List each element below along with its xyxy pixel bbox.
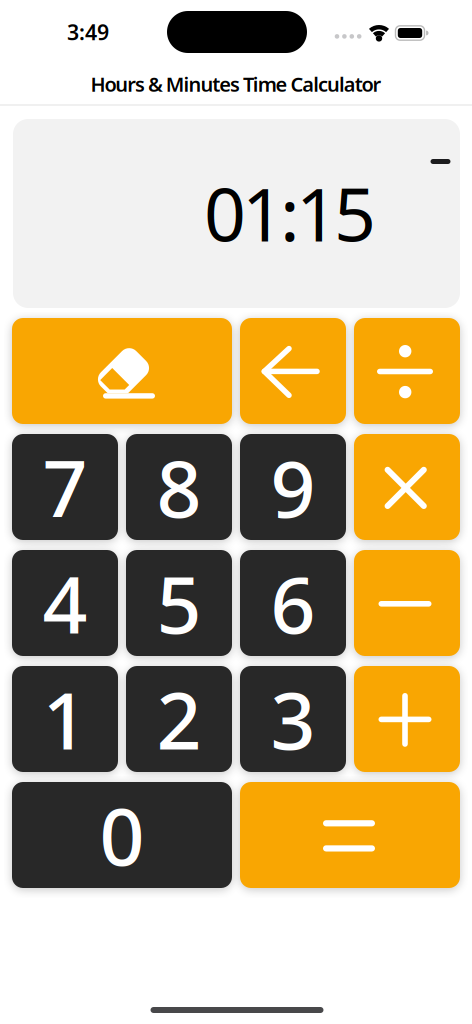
staticText: 3 — [270, 667, 315, 771]
staticText: 9 — [270, 435, 315, 539]
staticText: 8 — [156, 435, 201, 539]
button[interactable]: 9 — [240, 434, 346, 540]
button[interactable]: Add — [354, 666, 460, 772]
staticText: 6 — [270, 551, 315, 655]
button[interactable]: Divide — [354, 318, 460, 424]
staticText: 5 — [156, 551, 201, 655]
button[interactable]: 0 — [12, 782, 232, 888]
button[interactable]: Subtract — [354, 550, 460, 656]
button[interactable]: 3 — [240, 666, 346, 772]
staticText: 1 — [42, 667, 87, 771]
button[interactable]: 1 — [12, 666, 118, 772]
button[interactable]: Multiply — [354, 434, 460, 540]
staticText: 2 — [156, 667, 201, 771]
button[interactable]: 6 — [240, 550, 346, 656]
button[interactable]: 2 — [126, 666, 232, 772]
button[interactable]: Clear — [12, 318, 232, 424]
button[interactable]: 5 — [126, 550, 232, 656]
staticText: 3:49 — [67, 18, 109, 46]
staticText: Hours & Minutes Time Calculator — [90, 71, 381, 97]
button[interactable]: 7 — [12, 434, 118, 540]
staticText: 4 — [42, 551, 87, 655]
button[interactable]: 4 — [12, 550, 118, 656]
button[interactable]: Equals — [240, 782, 460, 888]
staticText: 0 — [99, 783, 144, 887]
button[interactable]: Backspace — [240, 318, 346, 424]
staticText: 7 — [42, 435, 87, 539]
button[interactable]: 8 — [126, 434, 232, 540]
staticText: 01:15 — [204, 164, 376, 262]
